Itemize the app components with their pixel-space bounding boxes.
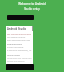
staticText: Requirements xyxy=(7,43,23,46)
staticText: Download the setup file and xyxy=(7,57,32,60)
staticText: get started quickly with xyxy=(7,33,31,36)
staticText: follow the wizard prompts xyxy=(7,60,32,63)
staticText: the official IDE for Android xyxy=(7,36,32,39)
button[interactable]: Code block xyxy=(7,15,34,20)
staticText: Android Studio setup xyxy=(7,27,32,31)
staticText: Welcome to Android xyxy=(18,2,46,6)
staticText: 8 GB RAM minimum, 16 GB xyxy=(7,49,32,52)
staticText: Install steps xyxy=(7,54,20,57)
staticText: 64-bit Microsoft Windows xyxy=(7,46,32,49)
staticText: app development now xyxy=(7,39,30,42)
staticText: Studio setup xyxy=(24,7,40,11)
